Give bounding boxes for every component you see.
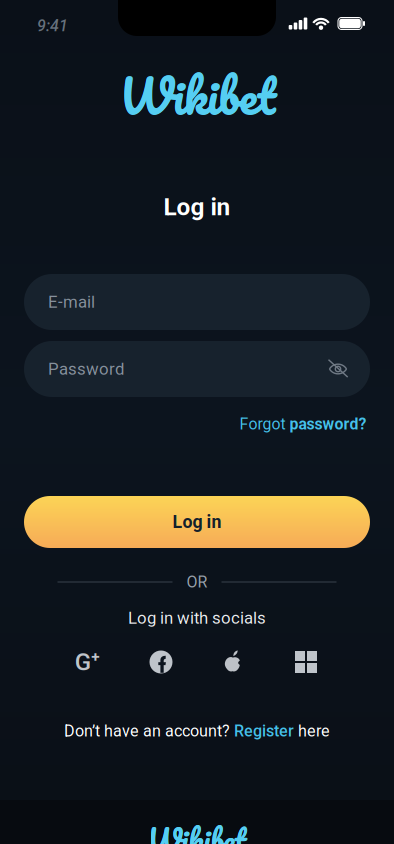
button[interactable] [149,650,172,673]
staticText: Log in [172,512,221,532]
staticText: Wikibet [147,814,246,844]
staticText: Register [234,721,294,740]
staticText: Don’t have an account? [64,721,234,740]
button[interactable]: Password [24,341,370,397]
staticText: Password [48,359,124,379]
button[interactable] [222,650,242,672]
staticText: Wikibet [147,815,246,844]
button[interactable]: G [75,648,99,676]
staticText: E-mail [48,292,95,312]
staticText: Log in with socials [128,608,266,628]
staticText: G [75,648,91,676]
button[interactable]: Forgot [239,415,366,433]
staticText: Forgot [239,415,289,433]
staticText: 9:41 [37,16,68,35]
staticText: Wikibet [120,56,276,134]
staticText: + [91,647,99,665]
button[interactable] [295,651,317,673]
staticText: OR [186,573,207,591]
staticText: password? [289,415,366,433]
staticText: here [294,721,330,740]
staticText: Wikibet [119,56,275,134]
button[interactable]: E-mail [24,274,370,330]
staticText: Wikibet [119,57,275,135]
button[interactable]: Don’t have an account? [64,721,330,740]
staticText: Wikibet [148,814,247,844]
staticText: Log in [163,193,230,221]
button[interactable]: Log in [24,496,370,548]
